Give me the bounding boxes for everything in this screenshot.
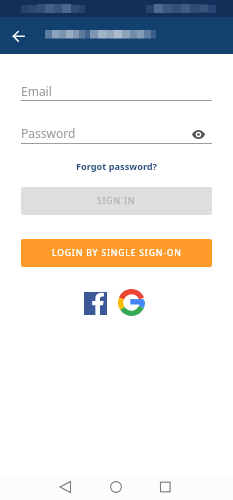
button[interactable]: Sign in with Facebook xyxy=(80,288,110,318)
staticText: SIGN IN xyxy=(97,195,136,207)
button[interactable]: LOGIN BY SINGLE SIGN-ON xyxy=(21,239,212,267)
staticText: Forgot password? xyxy=(76,160,157,173)
button[interactable]: Home xyxy=(97,474,135,500)
button[interactable]: Recents xyxy=(146,474,184,500)
staticText: Email xyxy=(21,83,52,99)
button[interactable]: Sign in with Google xyxy=(116,287,146,317)
button[interactable]: Back xyxy=(46,474,84,500)
button[interactable]: Back xyxy=(5,23,31,49)
staticText: LOGIN BY SINGLE SIGN-ON xyxy=(52,247,182,259)
staticText: Password xyxy=(21,125,76,141)
button[interactable]: Show password xyxy=(186,122,210,146)
button[interactable]: Forgot password? xyxy=(0,158,233,174)
button[interactable]: SIGN IN xyxy=(21,187,212,215)
